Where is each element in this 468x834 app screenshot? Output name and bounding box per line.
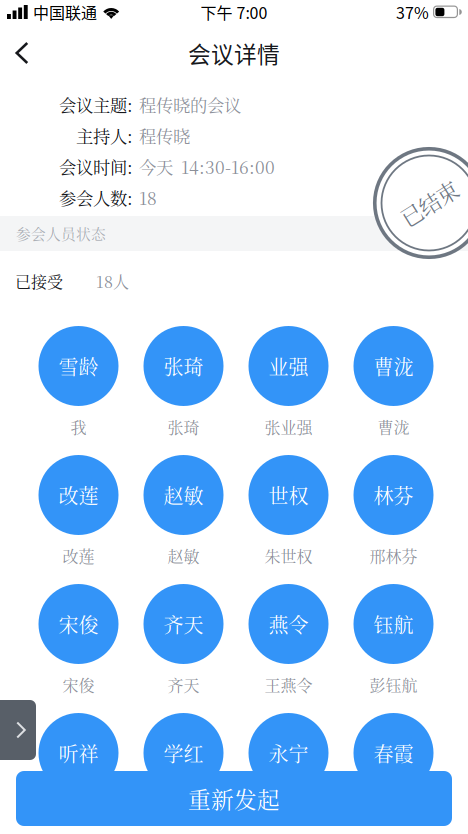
staticText: 程传晓 <box>139 123 190 148</box>
staticText: 重新发起 <box>188 782 280 815</box>
button[interactable]: 雪龄 <box>26 326 131 455</box>
staticText: 37% <box>396 0 429 24</box>
button[interactable]: 赵敏 <box>131 455 236 584</box>
staticText: 主持人: <box>76 123 133 148</box>
staticText: 雪龄 <box>58 352 98 380</box>
staticText: 18 <box>139 185 157 210</box>
staticText: 赵敏 <box>167 544 199 567</box>
staticText: 听祥 <box>58 739 98 767</box>
button[interactable]: 林芬 <box>341 455 446 584</box>
staticText: 张琦 <box>163 352 203 380</box>
button[interactable]: 业强 <box>236 326 341 455</box>
staticText: 改莲 <box>62 544 94 567</box>
button[interactable]: 展开侧栏 <box>0 700 36 760</box>
staticText: 学红 <box>167 802 199 825</box>
staticText: 曹泷 <box>373 352 413 380</box>
staticText: 齐天 <box>167 673 199 696</box>
staticText: 林芬 <box>373 481 413 509</box>
staticText: 永宁 <box>272 802 304 825</box>
button[interactable]: 张琦 <box>131 326 236 455</box>
staticText: 参会人数: <box>59 185 133 210</box>
button[interactable]: 返回 <box>0 31 44 75</box>
staticText: 钰航 <box>373 610 413 638</box>
staticText: 宋俊 <box>62 673 94 696</box>
button[interactable]: 齐天 <box>131 584 236 713</box>
staticText: 王燕令 <box>264 673 312 696</box>
staticText: 下午 7:00 <box>200 0 267 24</box>
button[interactable]: 听祥 <box>26 713 131 834</box>
button[interactable]: 学红 <box>131 713 236 834</box>
staticText: 张业强 <box>264 415 312 438</box>
button[interactable]: 燕令 <box>236 584 341 713</box>
staticText: 彭钰航 <box>369 673 417 696</box>
staticText: 宋俊 <box>58 610 98 638</box>
staticText: 齐天 <box>163 610 203 638</box>
button[interactable]: 重新发起 <box>16 771 452 826</box>
button[interactable]: 曹泷 <box>341 326 446 455</box>
staticText: 春霞 <box>373 739 413 767</box>
staticText: 会议主题: <box>59 92 133 117</box>
staticText: 赵敏 <box>163 481 203 509</box>
staticText: 程传晓的会议 <box>139 92 241 117</box>
staticText: 世权 <box>268 481 308 509</box>
staticText: 今天 14:30-16:00 <box>139 154 275 179</box>
staticText: 18人 <box>96 269 129 292</box>
button[interactable]: 钰航 <box>341 584 446 713</box>
staticText: 中国联通 <box>33 0 97 24</box>
staticText: 学红 <box>163 739 203 767</box>
staticText: 永宁 <box>268 739 308 767</box>
staticText: 业强 <box>268 352 308 380</box>
staticText: 已结束 <box>397 188 460 218</box>
button[interactable]: 世权 <box>236 455 341 584</box>
staticText: 会议详情 <box>188 37 280 69</box>
button[interactable]: 春霞 <box>341 713 446 834</box>
staticText: 邢林芬 <box>369 544 417 567</box>
button[interactable]: 宋俊 <box>26 584 131 713</box>
staticText: 改莲 <box>58 481 98 509</box>
staticText: 我 <box>70 415 86 438</box>
staticText: 曹泷 <box>377 415 409 438</box>
staticText: 已接受 <box>15 269 63 292</box>
button[interactable]: 永宁 <box>236 713 341 834</box>
staticText: 张琦 <box>167 415 199 438</box>
staticText: 会议时间: <box>59 154 133 179</box>
staticText: 参会人员状态 <box>16 223 106 244</box>
staticText: 燕令 <box>268 610 308 638</box>
staticText: 朱世权 <box>264 544 312 567</box>
button[interactable]: 改莲 <box>26 455 131 584</box>
